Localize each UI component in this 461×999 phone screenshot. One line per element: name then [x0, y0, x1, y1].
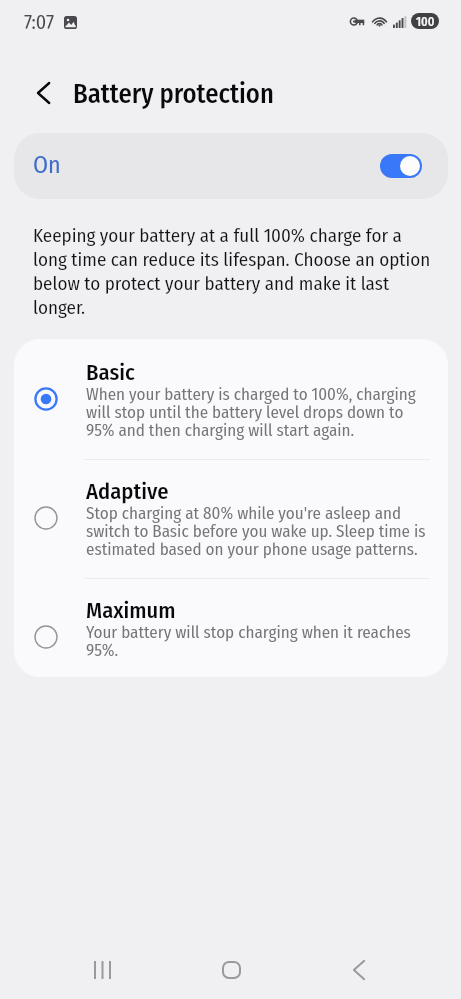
- staticText: Basic: [86, 361, 135, 386]
- staticText: Battery protection: [73, 80, 274, 110]
- staticText: Stop charging at 80% while you're asleep…: [86, 505, 431, 559]
- button[interactable]: Maximum: [14, 578, 448, 677]
- button[interactable]: Basic: [14, 339, 448, 459]
- staticText: Adaptive: [86, 480, 169, 505]
- staticText: Keeping your battery at a full 100% char…: [33, 223, 435, 319]
- button[interactable]: Adaptive: [14, 459, 448, 578]
- staticText: On: [33, 153, 61, 179]
- staticText: 7:07: [24, 10, 54, 34]
- button[interactable]: On: [14, 133, 448, 199]
- button[interactable]: Home: [199, 938, 263, 999]
- staticText: When your battery is charged to 100%, ch…: [86, 386, 431, 440]
- button[interactable]: Recent apps: [70, 938, 134, 999]
- staticText: Maximum: [86, 599, 176, 624]
- staticText: Your battery will stop charging when it …: [86, 624, 431, 660]
- button[interactable]: Back: [327, 938, 391, 999]
- staticText: 100: [416, 14, 435, 29]
- button[interactable]: Navigate up: [22, 72, 64, 114]
